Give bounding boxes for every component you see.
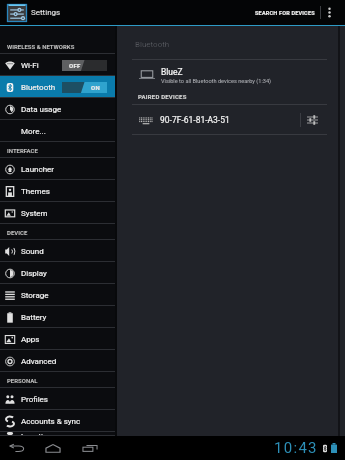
staticText: Location [21,432,52,436]
staticText: OFF [69,62,81,69]
button[interactable]: Device settings [301,105,324,135]
button[interactable]: Recent apps [77,436,103,460]
staticText: INTERFACE [7,147,38,154]
button[interactable]: Accounts & sync [0,410,115,432]
button[interactable]: More... [0,120,115,142]
staticText: Sound [21,247,44,256]
button[interactable]: Display [0,262,115,284]
staticText: Themes [21,187,50,196]
button[interactable]: Wi-Fi [0,54,115,76]
staticText: 10:43 [274,439,318,457]
button[interactable]: BlueZ [117,60,345,89]
button[interactable]: Profiles [0,388,115,410]
staticText: Display [21,269,47,278]
button[interactable]: Launcher [0,158,115,180]
staticText: ON [91,84,100,91]
button[interactable]: Home [40,436,66,460]
button[interactable]: More options [321,0,338,25]
staticText: Apps [21,335,40,344]
staticText: Settings [31,8,61,17]
staticText: 90-7F-61-81-A3-51 [160,115,230,125]
staticText: BlueZ [161,67,183,77]
button[interactable]: Location [0,432,115,436]
button[interactable]: Apps [0,328,115,350]
staticText: WIRELESS & NETWORKS [7,43,75,50]
staticText: More... [21,127,46,136]
staticText: PAIRED DEVICES [138,93,187,100]
button[interactable]: Bluetooth [0,76,115,98]
staticText: Visible to all Bluetooth devices nearby … [161,78,271,85]
staticText: Accounts & sync [21,417,81,426]
button[interactable]: System [0,202,115,224]
button[interactable]: SEARCH FOR DEVICES [250,0,320,25]
button[interactable]: Sound [0,240,115,262]
staticText: Bluetooth [21,83,56,92]
staticText: Advanced [21,357,57,366]
staticText: Battery [21,313,47,322]
staticText: PERSONAL [7,377,38,384]
button[interactable]: Battery [0,306,115,328]
staticText: Data usage [21,105,62,114]
button[interactable]: 90-7F-61-81-A3-51 [117,105,300,135]
button[interactable]: Advanced [0,350,115,372]
button[interactable]: Back [4,436,30,460]
staticText: SEARCH FOR DEVICES [255,10,315,16]
staticText: DEVICE [7,229,28,236]
staticText: Profiles [21,395,48,404]
staticText: Launcher [21,165,55,174]
staticText: Bluetooth [135,40,170,49]
button[interactable]: Themes [0,180,115,202]
button[interactable]: Storage [0,284,115,306]
staticText: Storage [21,291,49,300]
staticText: System [21,209,48,218]
button[interactable]: Data usage [0,98,115,120]
staticText: Wi-Fi [21,61,39,70]
